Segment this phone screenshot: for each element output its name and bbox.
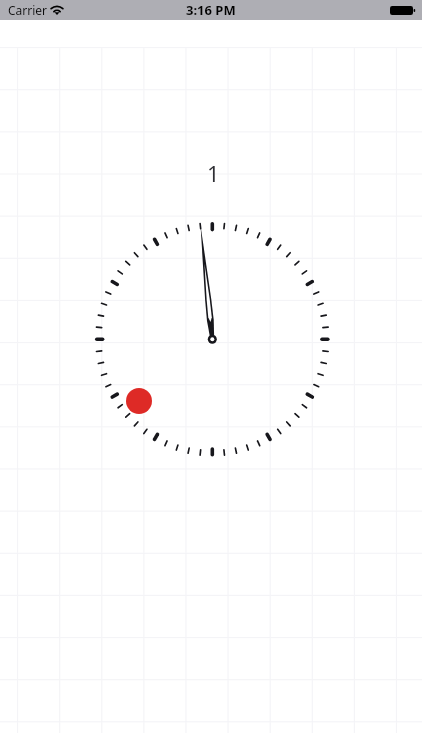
other: Wi-Fi xyxy=(50,3,65,16)
staticText: 3:16 PM xyxy=(186,1,236,19)
other: Battery full xyxy=(390,6,415,15)
staticText: Carrier xyxy=(8,2,48,18)
button[interactable]: 1 xyxy=(207,158,220,188)
button[interactable]: Clock face xyxy=(89,216,336,463)
button[interactable]: Alarm handle xyxy=(126,388,152,414)
